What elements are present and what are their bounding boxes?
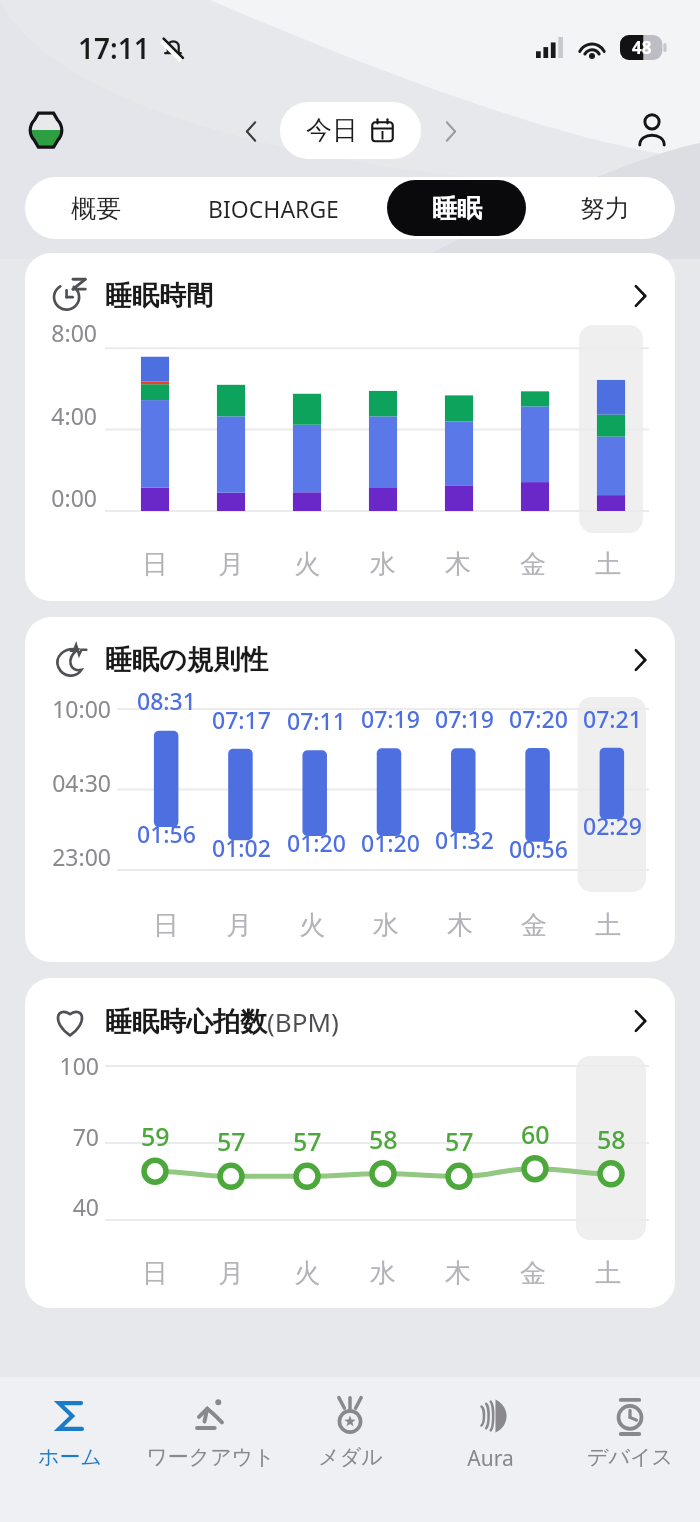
- button[interactable]: Aura: [420, 1377, 560, 1522]
- staticText: 01:20: [361, 827, 420, 858]
- staticText: 57: [293, 1124, 322, 1158]
- button[interactable]: 睡眠: [387, 180, 526, 236]
- staticText: 17:11: [78, 29, 150, 67]
- staticText: 48: [632, 36, 652, 59]
- staticText: 水: [373, 909, 399, 942]
- staticText: 木: [445, 548, 471, 581]
- staticText: 57: [217, 1124, 246, 1158]
- staticText: 土: [595, 548, 621, 581]
- staticText: BIOCHARGE: [208, 193, 339, 224]
- staticText: 07:20: [509, 703, 568, 734]
- staticText: 月: [218, 1257, 244, 1290]
- staticText: 日: [142, 548, 168, 581]
- staticText: 木: [445, 1257, 471, 1290]
- staticText: 睡眠: [432, 193, 482, 224]
- staticText: 日: [153, 909, 179, 942]
- staticText: 睡眠の規則性: [105, 643, 268, 677]
- staticText: メダル: [318, 1444, 383, 1470]
- staticText: 04:30: [31, 767, 111, 798]
- button[interactable]: Next day: [425, 106, 475, 156]
- button[interactable]: 睡眠時間: [25, 253, 675, 315]
- staticText: 40: [31, 1191, 99, 1222]
- staticText: 日: [142, 1257, 168, 1290]
- staticText: 水: [370, 1257, 396, 1290]
- staticText: 01:32: [435, 824, 494, 855]
- staticText: 58: [597, 1122, 626, 1156]
- button[interactable]: ホーム: [0, 1377, 140, 1522]
- staticText: 睡眠時心拍数: [105, 1005, 267, 1039]
- button[interactable]: Watch battery: [20, 104, 72, 156]
- staticText: 100: [31, 1050, 99, 1081]
- button[interactable]: 努力: [534, 180, 675, 236]
- staticText: 火: [299, 909, 325, 942]
- staticText: 金: [521, 909, 547, 942]
- staticText: 努力: [580, 193, 630, 224]
- button[interactable]: 睡眠時心拍数: [25, 978, 675, 1040]
- staticText: 70: [31, 1121, 99, 1152]
- staticText: 07:19: [361, 703, 420, 734]
- staticText: 睡眠時間: [105, 279, 213, 313]
- staticText: 木: [447, 909, 473, 942]
- staticText: 4:00: [31, 400, 97, 431]
- button[interactable]: デバイス: [560, 1377, 700, 1522]
- staticText: 07:21: [583, 703, 642, 734]
- staticText: ワークアウト: [146, 1444, 275, 1470]
- staticText: 0:00: [31, 482, 97, 513]
- button[interactable]: ワークアウト: [140, 1377, 280, 1522]
- staticText: 土: [595, 909, 621, 942]
- staticText: 01:56: [137, 818, 196, 849]
- staticText: 月: [218, 548, 244, 581]
- staticText: 今日: [306, 114, 358, 147]
- button[interactable]: 今日: [280, 102, 421, 159]
- staticText: デバイス: [587, 1444, 673, 1470]
- staticText: 火: [294, 548, 320, 581]
- staticText: 07:11: [287, 705, 346, 736]
- button[interactable]: 睡眠の規則性: [25, 617, 675, 679]
- staticText: Aura: [467, 1444, 514, 1473]
- button[interactable]: BIOCHARGE: [167, 180, 379, 236]
- staticText: 08:31: [137, 685, 196, 716]
- staticText: 57: [445, 1124, 474, 1158]
- button[interactable]: メダル: [280, 1377, 420, 1522]
- staticText: 火: [294, 1257, 320, 1290]
- staticText: 01:20: [287, 827, 346, 858]
- staticText: 金: [520, 548, 546, 581]
- staticText: 00:56: [509, 833, 568, 864]
- staticText: 07:17: [212, 704, 271, 735]
- staticText: 金: [520, 1257, 546, 1290]
- staticText: 23:00: [31, 841, 111, 872]
- staticText: 概要: [71, 193, 121, 224]
- staticText: 02:29: [583, 810, 642, 841]
- button[interactable]: Profile: [626, 104, 678, 156]
- staticText: 8:00: [31, 317, 97, 348]
- staticText: (BPM): [267, 1004, 339, 1039]
- staticText: 10:00: [31, 693, 111, 724]
- staticText: 土: [595, 1257, 621, 1290]
- staticText: 水: [370, 548, 396, 581]
- staticText: 58: [369, 1122, 398, 1156]
- button[interactable]: 概要: [25, 180, 167, 236]
- staticText: 60: [521, 1117, 550, 1151]
- button[interactable]: Previous day: [226, 106, 276, 156]
- staticText: 月: [226, 909, 252, 942]
- staticText: ホーム: [38, 1444, 102, 1470]
- staticText: 07:19: [435, 703, 494, 734]
- staticText: 01:02: [212, 832, 271, 863]
- staticText: 59: [141, 1119, 170, 1153]
